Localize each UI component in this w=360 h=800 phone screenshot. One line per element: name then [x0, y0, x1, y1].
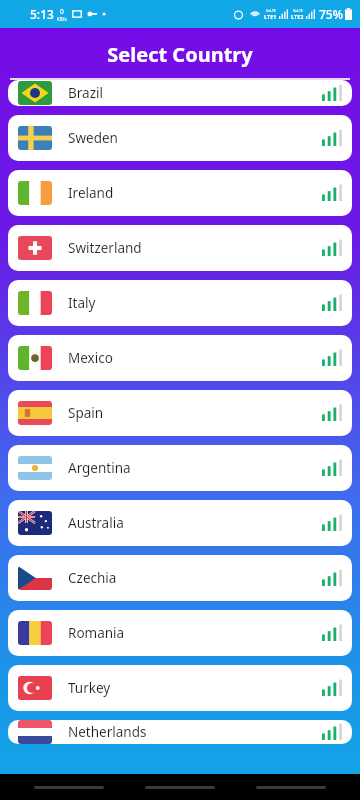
other: Signal strength	[322, 568, 342, 588]
staticText: VoLTE	[293, 8, 303, 13]
other: Signal strength	[322, 403, 342, 423]
staticText: Turkey	[68, 679, 111, 697]
button[interactable]: Navigation	[256, 786, 326, 789]
staticText: Romania	[68, 624, 125, 642]
staticText: Australia	[68, 514, 124, 532]
staticText: Netherlands	[68, 723, 147, 741]
other: Signal strength	[322, 128, 342, 148]
other: Signal strength	[322, 348, 342, 368]
button[interactable]: Italy	[8, 280, 352, 326]
button[interactable]: Netherlands	[8, 720, 352, 744]
staticText: Czechia	[68, 569, 117, 587]
other: Signal strength	[322, 623, 342, 643]
staticText: LTE2	[291, 13, 304, 20]
button[interactable]: Navigation	[145, 786, 215, 789]
button[interactable]: Czechia	[8, 555, 352, 601]
staticText: Sweden	[68, 129, 118, 147]
staticText: Spain	[68, 404, 104, 422]
other: Signal strength	[322, 183, 342, 203]
button[interactable]: Turkey	[8, 665, 352, 711]
other: Signal strength	[322, 513, 342, 533]
button[interactable]: Australia	[8, 500, 352, 546]
staticText: Mexico	[68, 349, 113, 367]
staticText: Select Country	[107, 41, 253, 68]
button[interactable]: Navigation	[34, 786, 104, 789]
button[interactable]: Sweden	[8, 115, 352, 161]
staticText: Switzerland	[68, 239, 142, 257]
staticText: Ireland	[68, 184, 114, 202]
other: Signal strength	[322, 458, 342, 478]
staticText: LTE1	[264, 13, 277, 20]
staticText: Brazil	[68, 84, 103, 102]
button[interactable]: Ireland	[8, 170, 352, 216]
staticText: 0	[60, 7, 64, 16]
button[interactable]: Argentina	[8, 445, 352, 491]
other: Signal strength	[322, 238, 342, 258]
other: Signal strength	[322, 293, 342, 313]
other: Signal strength	[322, 722, 342, 742]
other: Signal strength	[322, 678, 342, 698]
staticText: KB/s	[57, 16, 67, 22]
button[interactable]: Romania	[8, 610, 352, 656]
staticText: 75%	[319, 6, 343, 22]
staticText: Italy	[68, 294, 96, 312]
button[interactable]: Mexico	[8, 335, 352, 381]
button[interactable]: Brazil	[8, 80, 352, 106]
staticText: Argentina	[68, 459, 131, 477]
other: Signal strength	[322, 83, 342, 103]
button[interactable]: Switzerland	[8, 225, 352, 271]
staticText: VoLTE	[266, 8, 276, 13]
button[interactable]: Spain	[8, 390, 352, 436]
staticText: 5:13	[30, 6, 54, 22]
